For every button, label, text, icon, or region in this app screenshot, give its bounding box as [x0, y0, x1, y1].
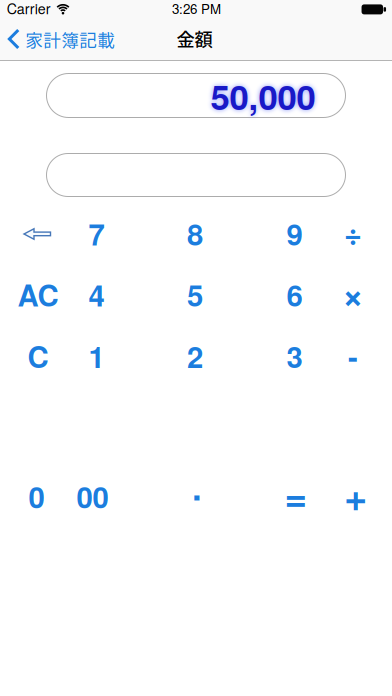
button[interactable]: × [326, 268, 380, 318]
staticText: AC [17, 274, 58, 316]
button[interactable]: AC [11, 270, 65, 320]
staticText: 8 [187, 212, 203, 254]
staticText: 7 [88, 212, 104, 254]
button[interactable]: 0 [10, 471, 64, 521]
button[interactable]: 6 [267, 270, 321, 320]
button[interactable]: Backspace [10, 209, 64, 259]
staticText: 3 [286, 335, 302, 377]
button[interactable]: 8 [168, 208, 222, 258]
button[interactable]: - [326, 331, 380, 381]
staticText: 9 [286, 212, 302, 254]
staticText: C [27, 335, 48, 377]
staticText: 6 [286, 274, 302, 316]
staticText: = [284, 467, 307, 523]
button[interactable]: メモ [46, 153, 346, 197]
button[interactable]: ÷ [326, 207, 380, 257]
button[interactable]: 4 [69, 270, 123, 320]
staticText: + [344, 466, 367, 524]
button[interactable]: = [269, 470, 323, 520]
staticText: 50,000 [210, 71, 315, 121]
button[interactable]: + [328, 470, 382, 520]
staticText: 0 [29, 475, 45, 517]
staticText: × [342, 266, 364, 320]
button[interactable]: 3 [267, 331, 321, 381]
button[interactable]: 5 [168, 270, 222, 320]
button[interactable]: 7 [69, 208, 123, 258]
staticText: 5 [187, 274, 203, 316]
button[interactable]: 金額 [46, 73, 346, 118]
button[interactable]: . [170, 461, 224, 511]
staticText: 00 [76, 475, 108, 517]
staticText: 1 [88, 335, 104, 377]
button[interactable]: Back [8, 26, 115, 52]
button[interactable]: 00 [65, 471, 119, 521]
button[interactable]: C [11, 331, 65, 381]
staticText: 2 [187, 335, 203, 377]
button[interactable]: 2 [168, 331, 222, 381]
staticText: . [192, 461, 202, 511]
staticText: 金額 [176, 25, 212, 52]
staticText: Carrier [7, 0, 51, 18]
button[interactable]: 1 [69, 331, 123, 381]
staticText: 3:26 PM [172, 0, 221, 18]
staticText: 4 [88, 274, 104, 316]
staticText: - [348, 335, 358, 377]
button[interactable]: 9 [267, 208, 321, 258]
staticText: 家計簿記載 [25, 26, 115, 52]
staticText: ÷ [344, 210, 362, 254]
